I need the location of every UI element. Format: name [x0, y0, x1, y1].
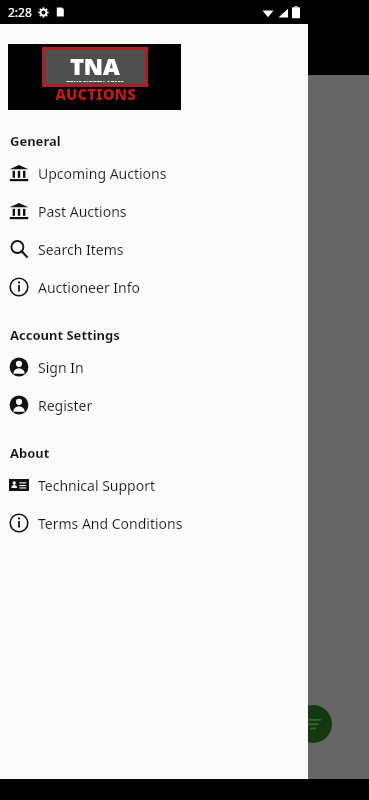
staticText: Search Items — [38, 240, 124, 259]
staticText: Technical Support — [38, 476, 156, 495]
staticText: Upcoming Auctions — [38, 164, 167, 183]
staticText: TNA — [70, 50, 120, 81]
button[interactable]: Past Auctions — [0, 192, 308, 230]
button[interactable]: Register — [0, 386, 308, 424]
staticText: No auctions available here — [104, 105, 266, 123]
staticText: AUCTIONS — [55, 84, 136, 104]
staticText: Auctioneer Info — [38, 278, 141, 297]
button[interactable]: Upcoming Auctions — [0, 154, 308, 192]
staticText: General — [10, 132, 61, 150]
staticText: TRUE NORTH ARMS — [66, 79, 124, 82]
button[interactable]: Technical Support — [0, 466, 308, 504]
button[interactable]: Search Items — [0, 230, 308, 268]
button[interactable]: Filter — [294, 705, 332, 743]
staticText: Terms And Conditions — [38, 514, 183, 533]
button[interactable]: Sign In — [0, 348, 308, 386]
staticText: Past Auctions — [38, 202, 127, 221]
staticText: 2:28 — [8, 4, 32, 20]
staticText: Register — [38, 396, 93, 415]
button[interactable]: Terms And Conditions — [0, 504, 308, 542]
staticText: About — [10, 444, 50, 462]
staticText: Account Settings — [10, 326, 120, 344]
staticText: Sign In — [38, 358, 84, 377]
button[interactable]: Auctioneer Info — [0, 268, 308, 306]
